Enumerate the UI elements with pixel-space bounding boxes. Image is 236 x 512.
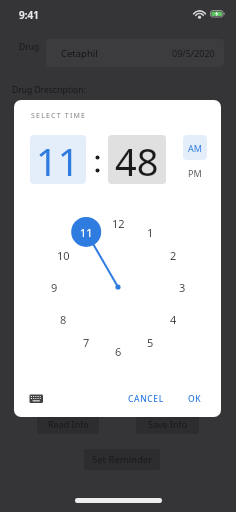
staticText: 4	[170, 312, 177, 327]
staticText: 11	[80, 225, 93, 240]
button[interactable]: Set Reminder	[84, 449, 160, 470]
staticText: Drug Drescription:	[12, 84, 86, 96]
button[interactable]: OK	[181, 388, 209, 410]
staticText: Read Info	[48, 418, 89, 430]
staticText: 10	[57, 248, 70, 263]
staticText: CANCEL	[128, 393, 164, 405]
staticText: SELECT TIME	[31, 111, 87, 121]
staticText: 11	[36, 135, 80, 184]
staticText: 7	[83, 335, 90, 350]
staticText: 9	[51, 280, 58, 295]
staticText: PM	[188, 167, 202, 179]
staticText: 8	[60, 312, 67, 327]
button[interactable]	[26, 390, 48, 408]
button[interactable]: 11	[30, 135, 86, 184]
staticText: AM	[188, 142, 202, 154]
button[interactable]: PM	[183, 160, 207, 185]
staticText: 9:41	[19, 8, 39, 22]
button[interactable]: AM	[183, 135, 207, 160]
button[interactable]: Read Info	[37, 414, 99, 434]
staticText: 12	[112, 216, 125, 231]
staticText: 09/5/2020	[172, 47, 215, 59]
staticText: 6	[115, 344, 122, 359]
staticText: 3	[179, 280, 186, 295]
staticText: Cetaphil	[61, 47, 98, 60]
button[interactable]: CANCEL	[114, 388, 178, 410]
button[interactable]: 48	[108, 135, 166, 184]
staticText: 2	[170, 248, 177, 263]
staticText: Set Reminder	[92, 453, 153, 466]
staticText: OK	[188, 393, 202, 405]
button[interactable]: Save Info	[136, 414, 199, 434]
staticText: 5	[147, 335, 154, 350]
staticText: 1	[147, 225, 154, 240]
staticText: Drug	[19, 41, 40, 53]
staticText: 48	[115, 135, 159, 184]
staticText: Save Info	[148, 418, 188, 430]
